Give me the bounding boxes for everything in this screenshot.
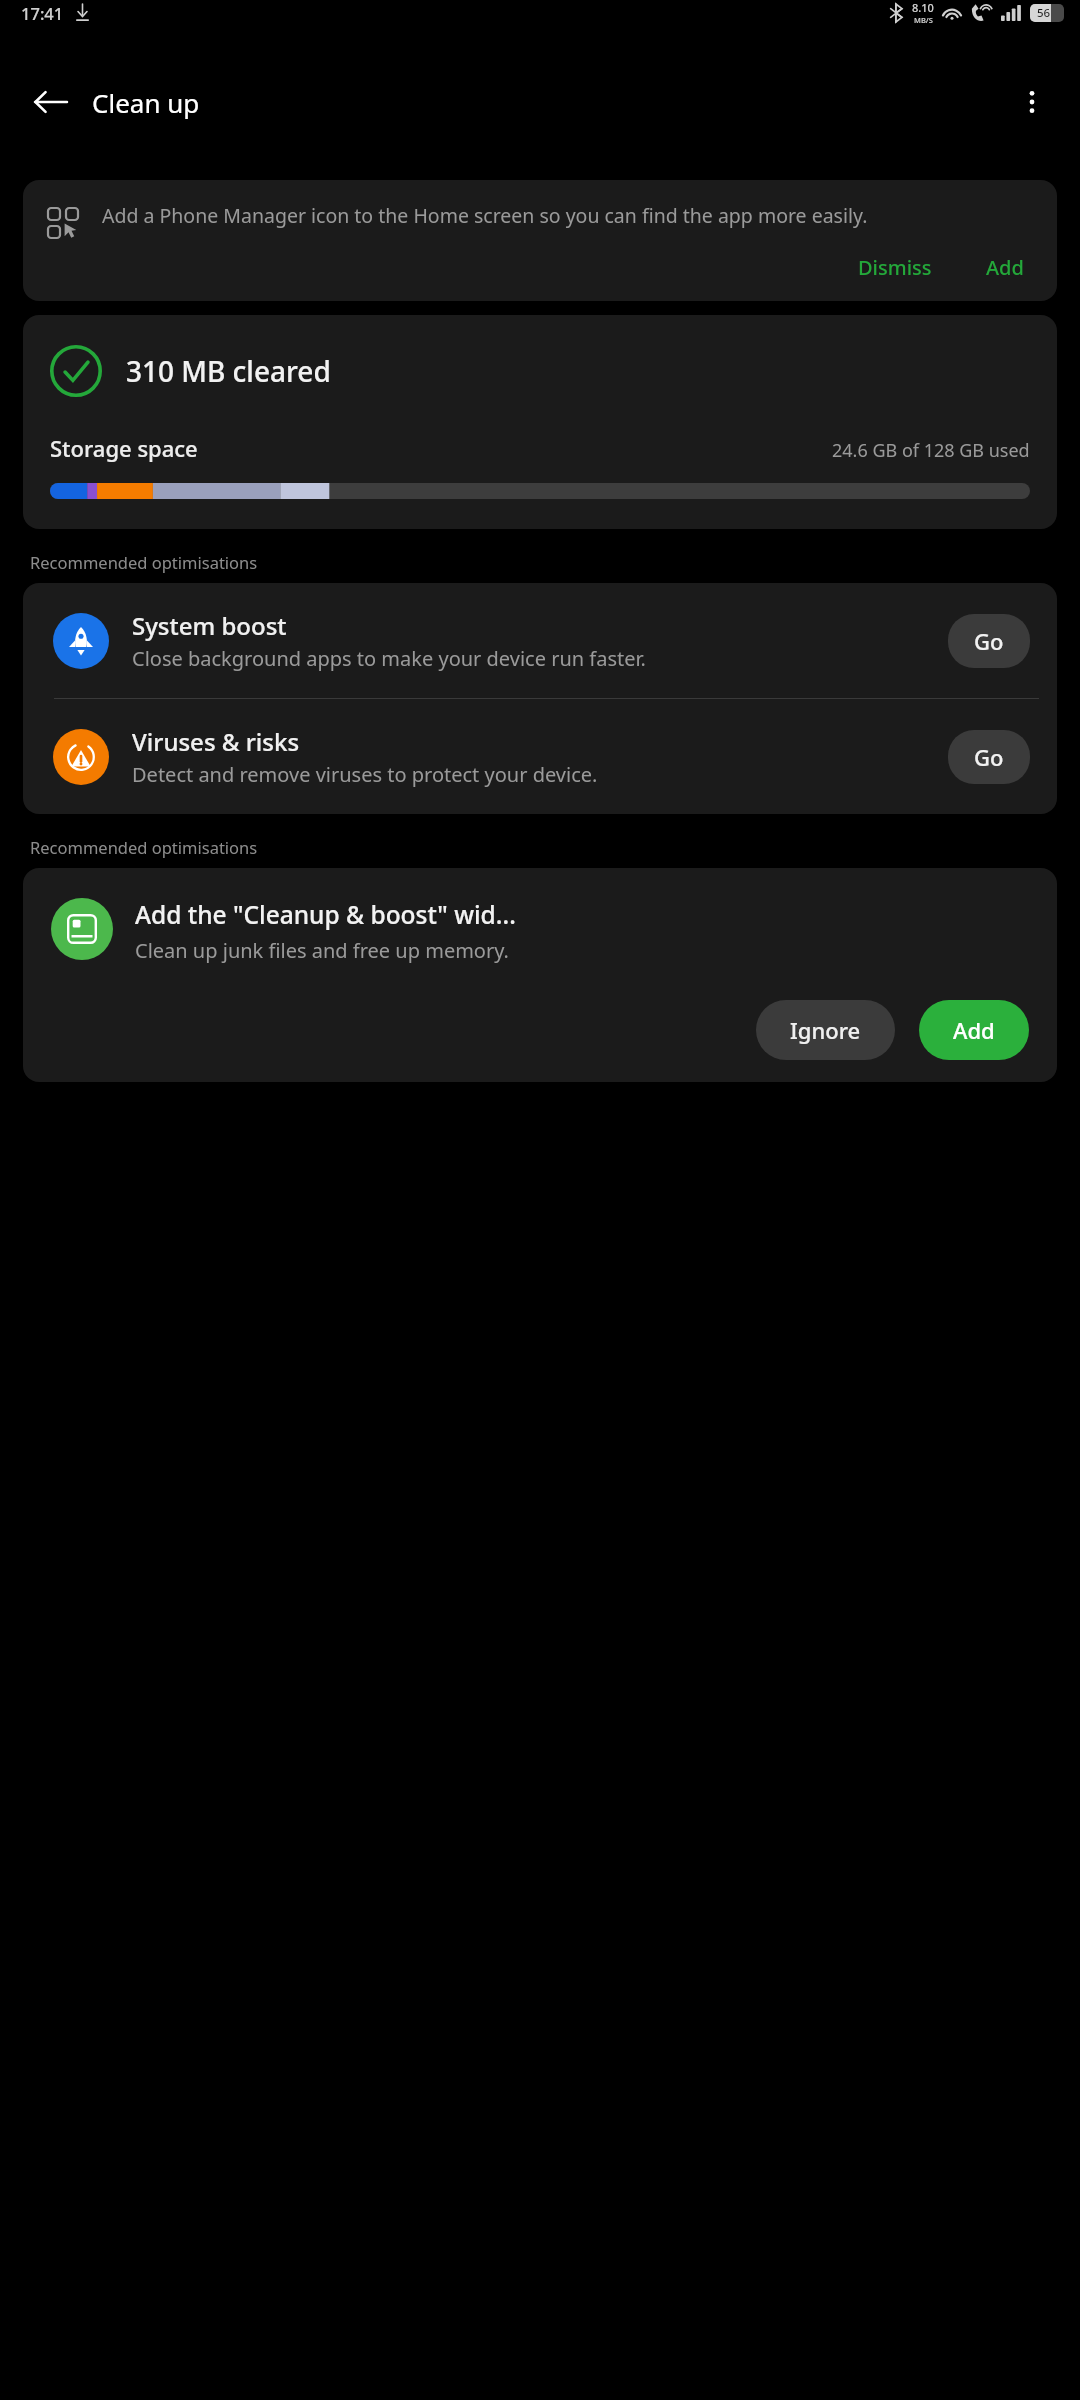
- staticText: Detect and remove viruses to protect you…: [132, 761, 598, 788]
- staticText: 8.10: [912, 0, 934, 15]
- button[interactable]: Go: [948, 730, 1030, 784]
- staticText: Recommended optimisations: [30, 836, 258, 858]
- staticText: MB/S: [914, 15, 933, 25]
- staticText: 56: [1037, 5, 1051, 21]
- button[interactable]: Dismiss: [850, 248, 940, 287]
- button[interactable]: More options: [1004, 74, 1060, 130]
- staticText: Close background apps to make your devic…: [132, 645, 646, 672]
- staticText: 310 MB cleared: [126, 352, 331, 390]
- staticText: Clean up: [92, 85, 200, 120]
- button[interactable]: Back: [22, 73, 80, 131]
- button[interactable]: Add: [978, 248, 1032, 287]
- staticText: 24.6 GB of 128 GB used: [832, 438, 1030, 463]
- button[interactable]: Viruses & risks: [23, 699, 1057, 814]
- staticText: Add: [986, 254, 1024, 281]
- button[interactable]: System boost: [23, 583, 1057, 698]
- staticText: Go: [974, 626, 1004, 656]
- staticText: Add the "Cleanup & boost" wid...: [135, 898, 516, 931]
- staticText: Clean up junk files and free up memory.: [135, 937, 509, 964]
- staticText: Go: [974, 742, 1004, 772]
- staticText: Add a Phone Manager icon to the Home scr…: [102, 202, 868, 229]
- staticText: Add: [953, 1015, 995, 1045]
- staticText: Dismiss: [858, 254, 932, 281]
- button[interactable]: Add: [919, 1000, 1029, 1060]
- staticText: 17:41: [21, 2, 64, 24]
- button[interactable]: Ignore: [756, 1000, 895, 1060]
- button[interactable]: Add a Phone Manager icon to the Home scr…: [23, 180, 1057, 301]
- staticText: Ignore: [790, 1015, 861, 1045]
- button[interactable]: Add the "Cleanup & boost" wid...: [23, 868, 1057, 1082]
- staticText: Viruses & risks: [132, 725, 300, 758]
- staticText: Storage space: [50, 433, 198, 463]
- staticText: Recommended optimisations: [30, 551, 258, 573]
- button[interactable]: Go: [948, 614, 1030, 668]
- button[interactable]: 310 MB cleared: [23, 315, 1057, 529]
- staticText: System boost: [132, 609, 287, 642]
